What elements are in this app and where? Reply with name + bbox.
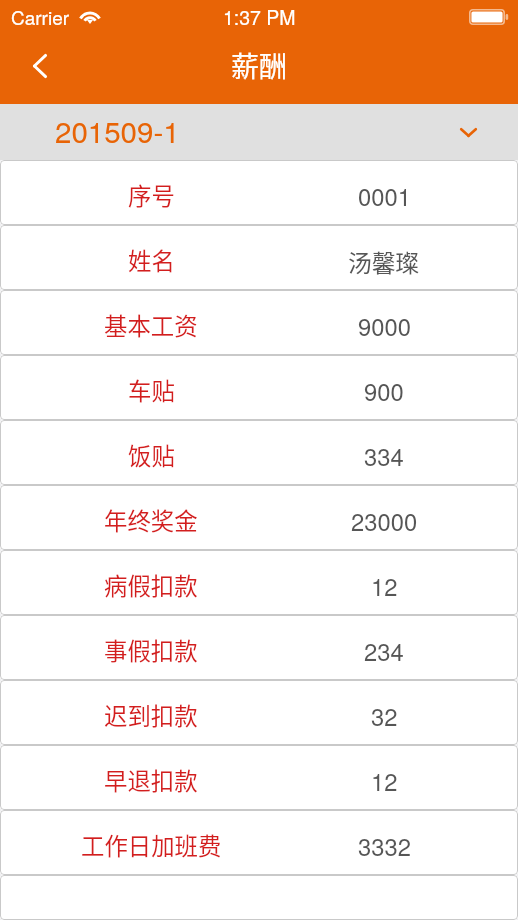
staticText: 姓名	[128, 243, 175, 277]
staticText: 9000	[358, 309, 411, 343]
button[interactable]: 事假扣款	[0, 615, 518, 680]
staticText: 序号	[128, 178, 175, 212]
staticText: 年终奖金	[104, 503, 198, 537]
button[interactable]: 迟到扣款	[0, 680, 518, 745]
button[interactable]: 年终奖金	[0, 485, 518, 550]
staticText: 0001	[358, 179, 411, 213]
button[interactable]: 201509-1	[0, 104, 518, 160]
button[interactable]: 姓名	[0, 225, 518, 290]
button[interactable]	[0, 875, 518, 920]
button[interactable]: 车贴	[0, 355, 518, 420]
other: Battery	[469, 9, 509, 25]
staticText: 工作日加班费	[81, 828, 222, 862]
staticText: 23000	[351, 504, 418, 538]
staticText: 汤馨璨	[348, 244, 420, 278]
button[interactable]: 早退扣款	[0, 745, 518, 810]
staticText: 3332	[358, 829, 411, 863]
staticText: 1:37 PM	[223, 3, 296, 31]
staticText: 早退扣款	[104, 763, 198, 797]
staticText: 薪酬	[231, 45, 288, 86]
button[interactable]: 饭贴	[0, 420, 518, 485]
staticText: 12	[371, 764, 398, 798]
staticText: 迟到扣款	[104, 698, 198, 732]
staticText: 201509-1	[55, 109, 180, 151]
staticText: 事假扣款	[104, 633, 198, 667]
staticText: 车贴	[128, 373, 175, 407]
staticText: 334	[364, 439, 404, 473]
button[interactable]: Back	[0, 33, 70, 104]
staticText: 32	[371, 699, 398, 733]
staticText: Carrier	[11, 3, 70, 30]
staticText: 基本工资	[104, 308, 198, 342]
button[interactable]: 病假扣款	[0, 550, 518, 615]
staticText: 饭贴	[128, 438, 175, 472]
staticText: 234	[364, 634, 404, 668]
staticText: 12	[371, 569, 398, 603]
staticText: 900	[364, 374, 404, 408]
button[interactable]: 工作日加班费	[0, 810, 518, 875]
button[interactable]: 序号	[0, 160, 518, 225]
staticText: 病假扣款	[104, 568, 198, 602]
other: Expand	[460, 128, 477, 137]
button[interactable]: 基本工资	[0, 290, 518, 355]
